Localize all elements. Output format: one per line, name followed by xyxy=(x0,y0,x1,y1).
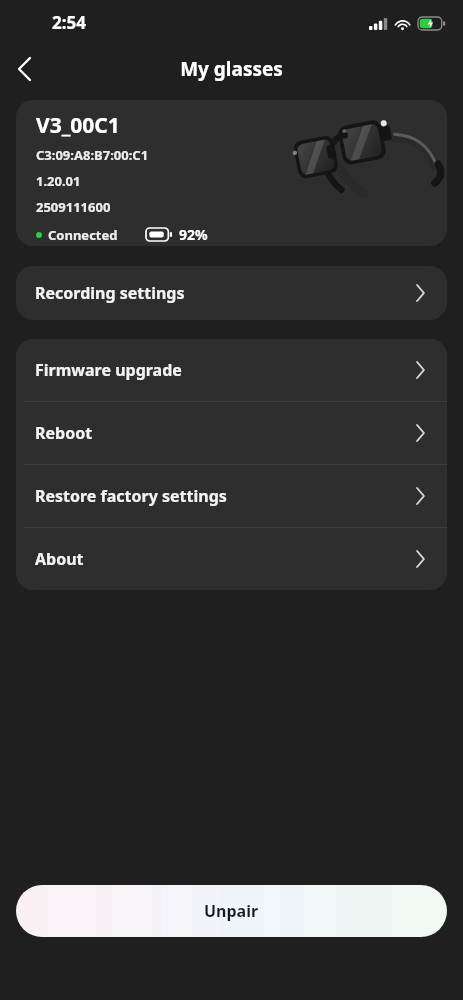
button[interactable]: Restore factory settings xyxy=(16,465,447,527)
staticText: V3_00C1 xyxy=(36,111,120,140)
staticText: C3:09:A8:B7:00:C1 xyxy=(36,146,149,164)
button[interactable]: About xyxy=(16,528,447,590)
button[interactable]: Reboot xyxy=(16,402,447,464)
staticText: Restore factory settings xyxy=(35,485,227,507)
staticText: About xyxy=(35,548,84,570)
button[interactable]: Unpair xyxy=(16,885,447,937)
button[interactable]: V3_00C1 xyxy=(16,100,447,246)
staticText: 1.20.01 xyxy=(36,172,81,190)
staticText: 2:54 xyxy=(52,11,86,34)
button[interactable]: Back xyxy=(0,46,48,92)
staticText: Recording settings xyxy=(35,282,185,304)
staticText: My glasses xyxy=(180,56,283,82)
staticText: Connected xyxy=(48,226,118,244)
staticText: Firmware upgrade xyxy=(35,359,182,381)
staticText: 2509111600 xyxy=(36,198,111,216)
button[interactable]: Recording settings xyxy=(16,266,447,320)
button[interactable]: Firmware upgrade xyxy=(16,339,447,401)
staticText: 92% xyxy=(179,225,208,244)
staticText: Unpair xyxy=(204,900,259,922)
staticText: Reboot xyxy=(35,422,93,444)
